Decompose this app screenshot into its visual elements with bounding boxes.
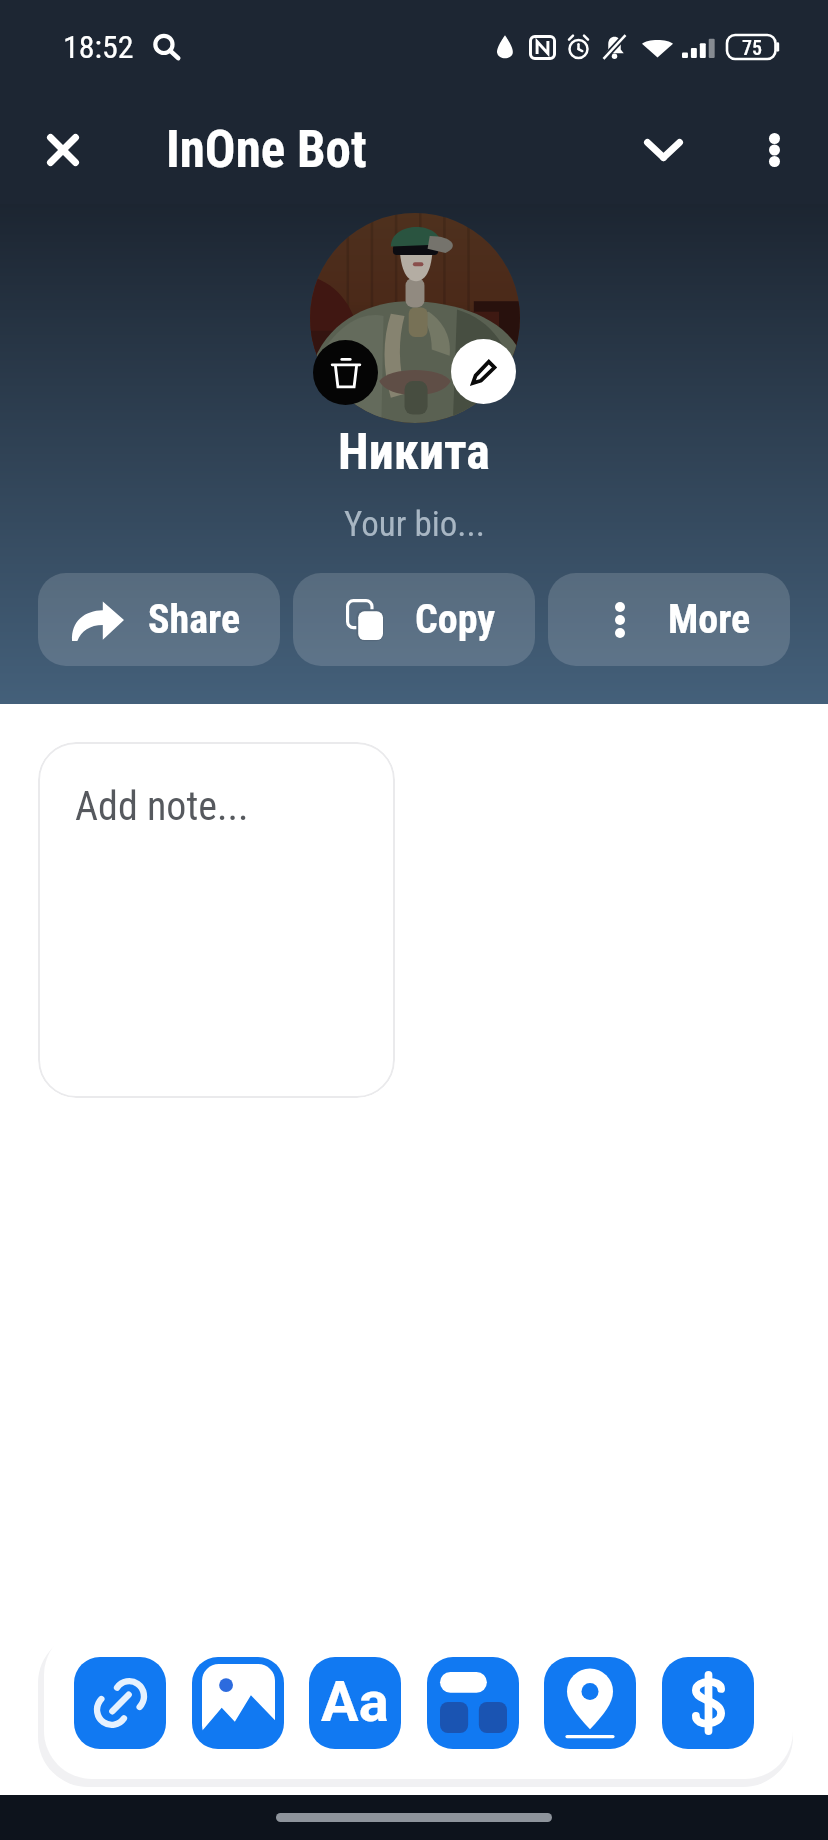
staticText: Никита — [338, 423, 490, 482]
button[interactable]: Expand — [618, 105, 708, 195]
button[interactable]: Link — [74, 1657, 166, 1749]
button[interactable]: Payment — [662, 1657, 754, 1749]
staticText: Aa — [321, 1669, 389, 1735]
button[interactable]: Text format — [309, 1657, 401, 1749]
staticText: Copy — [415, 596, 496, 643]
button[interactable]: Layout — [427, 1657, 519, 1749]
button[interactable]: Image — [192, 1657, 284, 1749]
button[interactable]: More options — [729, 105, 819, 195]
button[interactable]: Location — [544, 1657, 636, 1749]
staticText: More — [668, 596, 751, 643]
button[interactable]: More — [548, 573, 790, 666]
staticText: 75 — [742, 36, 762, 59]
button[interactable]: Close — [18, 105, 108, 195]
button[interactable]: Edit photo — [451, 339, 516, 404]
staticText: InOne Bot — [166, 120, 367, 180]
button[interactable]: Profile photo — [310, 213, 520, 423]
staticText: 18:52 — [63, 28, 134, 66]
button[interactable]: Copy — [293, 573, 535, 666]
staticText: Share — [148, 596, 241, 643]
button[interactable]: Share — [38, 573, 280, 666]
staticText: Your bio... — [344, 504, 485, 545]
staticText: Add note... — [75, 783, 249, 830]
button[interactable]: Delete photo — [313, 340, 378, 405]
button[interactable]: Add note... — [38, 742, 395, 1098]
